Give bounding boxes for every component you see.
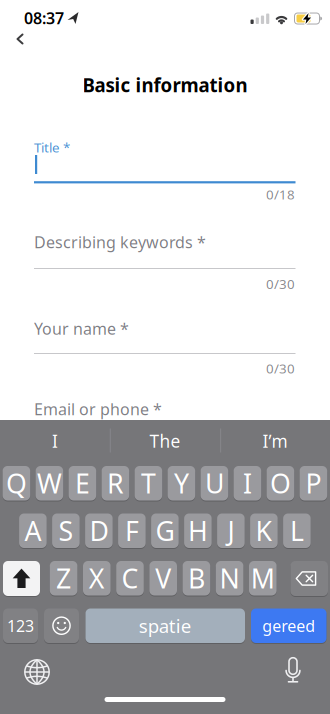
button[interactable]: Shift [3, 561, 40, 596]
staticText: C [121, 560, 138, 596]
button[interactable]: Your name [0, 317, 330, 357]
staticText: Title * [34, 138, 70, 156]
button[interactable]: K [250, 513, 278, 548]
button[interactable]: L [283, 513, 311, 548]
staticText: Basic information [82, 73, 247, 97]
button[interactable]: gereed [251, 608, 326, 643]
button[interactable]: P [300, 466, 327, 500]
button[interactable]: C [116, 561, 144, 595]
button[interactable]: spatie [85, 608, 245, 643]
button[interactable]: J [217, 513, 245, 548]
button[interactable]: N [216, 561, 243, 595]
staticText: I’m [262, 429, 287, 452]
button[interactable]: Delete [290, 561, 328, 596]
staticText: J [227, 513, 234, 548]
button[interactable]: Email or phone [0, 401, 330, 420]
button[interactable]: F [118, 513, 146, 548]
staticText: 123 [7, 615, 34, 636]
button[interactable]: 123 [3, 608, 38, 643]
button[interactable]: B [183, 561, 210, 595]
button[interactable]: R [102, 466, 129, 500]
button[interactable]: H [184, 513, 212, 548]
button[interactable]: I [234, 466, 261, 500]
button[interactable]: Emoji [44, 608, 79, 643]
button[interactable]: E [69, 466, 96, 500]
staticText: spatie [139, 613, 192, 638]
staticText: Q [6, 465, 27, 501]
button[interactable]: T [135, 466, 162, 500]
button[interactable]: U [201, 466, 228, 500]
staticText: E [75, 465, 90, 501]
button[interactable]: Describing keywords [0, 232, 330, 272]
staticText: L [290, 513, 304, 548]
button[interactable]: Z [50, 561, 77, 595]
staticText: Describing keywords * [34, 231, 206, 253]
staticText: P [305, 465, 321, 501]
staticText: N [220, 560, 240, 596]
button[interactable]: I’m [223, 421, 327, 461]
button[interactable]: Y [168, 466, 195, 500]
button[interactable]: G [151, 513, 179, 548]
staticText: 0/18 [266, 185, 295, 203]
button[interactable]: A [19, 513, 47, 548]
staticText: Email or phone * [34, 398, 162, 420]
button[interactable]: D [85, 513, 113, 548]
staticText: 0/30 [266, 275, 295, 293]
staticText: D [89, 513, 108, 548]
button[interactable]: I [3, 421, 107, 461]
staticText: H [188, 513, 208, 548]
staticText: F [125, 513, 139, 548]
staticText: V [155, 560, 171, 596]
staticText: Your name * [34, 318, 129, 339]
button[interactable]: W [36, 466, 63, 500]
staticText: K [255, 513, 272, 548]
staticText: O [270, 465, 291, 501]
staticText: Z [56, 560, 71, 596]
button[interactable]: Title [0, 138, 330, 188]
staticText: M [251, 560, 275, 596]
staticText: G [155, 513, 174, 548]
button[interactable]: V [149, 561, 177, 595]
staticText: W [37, 465, 62, 501]
staticText: U [205, 465, 224, 501]
staticText: The [149, 429, 180, 452]
staticText: I [52, 429, 58, 452]
staticText: I [243, 465, 252, 501]
button[interactable]: The [113, 421, 217, 461]
staticText: R [107, 465, 124, 501]
staticText: S [58, 513, 73, 548]
staticText: 08:37 [24, 7, 64, 29]
button[interactable]: M [249, 561, 277, 595]
button[interactable]: X [83, 561, 111, 595]
button[interactable]: Back [1, 21, 41, 57]
staticText: gereed [262, 615, 315, 636]
button[interactable]: Next keyboard [15, 651, 59, 693]
staticText: T [141, 465, 156, 501]
staticText: B [188, 560, 205, 596]
button[interactable]: O [267, 466, 294, 500]
staticText: Y [174, 465, 189, 501]
button[interactable]: S [52, 513, 80, 548]
button[interactable]: Dictate [271, 651, 315, 693]
staticText: 0/30 [266, 359, 295, 377]
staticText: A [24, 513, 41, 548]
staticText: X [89, 560, 105, 596]
button[interactable]: Q [3, 466, 30, 500]
